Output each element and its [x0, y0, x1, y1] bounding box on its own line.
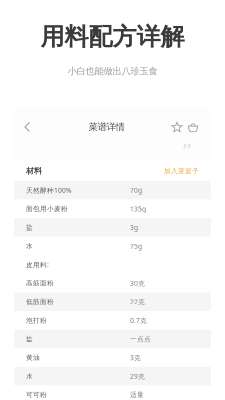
staticText: 用料配方详解: [40, 22, 184, 51]
staticText: 可可粉: [26, 391, 47, 399]
staticText: 盐: [26, 223, 33, 231]
staticText: 菜谱详情: [88, 121, 124, 133]
staticText: 22克: [130, 297, 145, 306]
staticText: 天然酵种100%: [26, 186, 72, 195]
staticText: 高筋面粉: [26, 279, 54, 287]
staticText: 加入菜篮子: [164, 167, 199, 175]
staticText: 小白也能做出八珍玉食: [67, 65, 157, 77]
staticText: 75g: [130, 242, 142, 250]
staticText: 3克: [130, 353, 141, 362]
staticText: 水: [26, 242, 33, 250]
button[interactable]: 收藏: [169, 118, 185, 136]
staticText: 一点点: [130, 335, 151, 343]
staticText: 泡打粉: [26, 316, 47, 324]
staticText: 黄油: [26, 353, 40, 362]
staticText: 盐: [26, 335, 33, 343]
staticText: 低筋面粉: [26, 298, 54, 306]
staticText: 30克: [130, 279, 145, 288]
staticText: 适量: [130, 391, 144, 399]
staticText: 水: [26, 372, 33, 380]
staticText: ”: [183, 138, 191, 163]
button[interactable]: 返回: [24, 118, 44, 136]
staticText: 3g: [130, 223, 138, 232]
staticText: 面包用小麦粉: [26, 205, 68, 213]
staticText: 135g: [130, 204, 146, 213]
staticText: 29克: [130, 372, 145, 381]
button[interactable]: 菜篮子: [185, 118, 201, 136]
staticText: 材料: [26, 166, 42, 176]
staticText: 皮用料:: [26, 260, 49, 269]
button[interactable]: 加入菜篮子: [164, 167, 199, 175]
staticText: 70g: [130, 186, 142, 195]
staticText: 0.7克: [130, 316, 147, 325]
